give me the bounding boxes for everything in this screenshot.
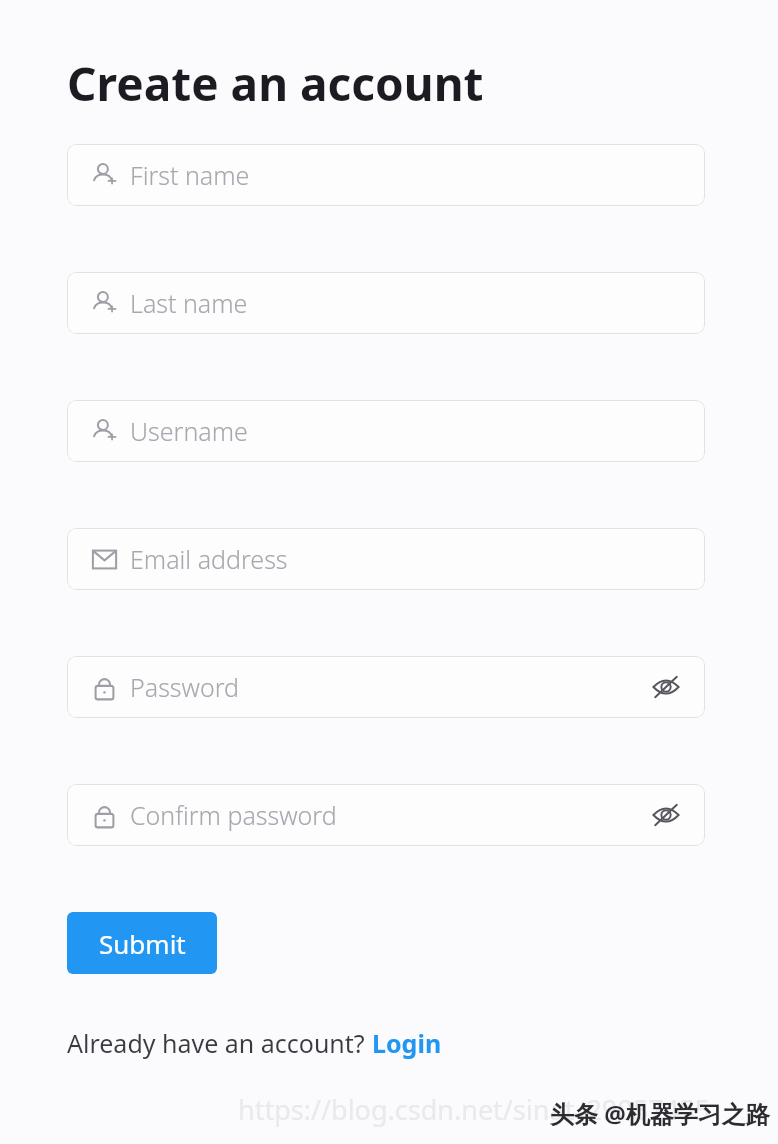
staticText: Username: [130, 414, 248, 448]
button[interactable]: Show password: [647, 668, 685, 706]
button[interactable]: Email address: [67, 528, 705, 590]
button[interactable]: Username: [67, 400, 705, 462]
staticText: Password: [130, 670, 239, 704]
staticText: Already have an account?: [67, 1026, 372, 1060]
button[interactable]: Last name: [67, 272, 705, 334]
staticText: Confirm password: [130, 798, 337, 832]
staticText: Create an account: [67, 52, 484, 115]
staticText: First name: [130, 158, 250, 192]
button[interactable]: Login: [372, 1026, 442, 1060]
staticText: https://blog.csdn.net/sinat_29057455: [238, 1091, 710, 1128]
button[interactable]: Password: [67, 656, 705, 718]
staticText: 头条 @机器学习之路: [550, 1097, 770, 1130]
button[interactable]: First name: [67, 144, 705, 206]
staticText: Submit: [99, 926, 186, 961]
staticText: Login: [372, 1026, 442, 1060]
button[interactable]: Submit: [67, 912, 217, 974]
staticText: Email address: [130, 542, 288, 576]
button[interactable]: Confirm password: [67, 784, 705, 846]
button[interactable]: Show password: [647, 796, 685, 834]
staticText: Last name: [130, 286, 248, 320]
